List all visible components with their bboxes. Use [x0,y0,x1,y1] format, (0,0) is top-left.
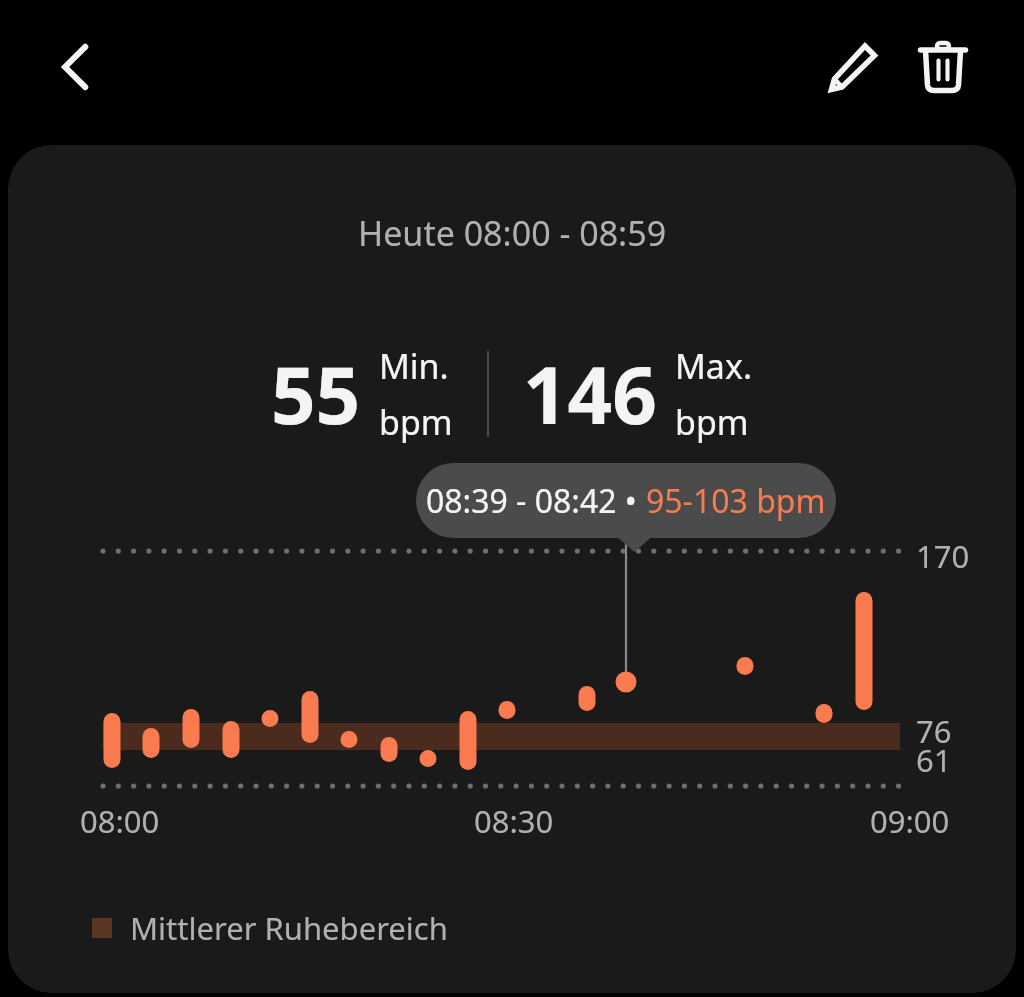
staticText: Heute 08:00 - 08:59 [358,210,667,256]
staticText: bpm [379,399,453,445]
button[interactable]: Delete [902,26,984,108]
button[interactable]: 08:39 - 08:42 • [416,463,836,538]
staticText: 08:00 [80,800,160,842]
staticText: 61 [916,739,952,781]
staticText: 08:30 [474,800,554,842]
staticText: bpm [675,399,749,445]
button[interactable]: Mittlerer Ruhebereich [92,907,448,949]
staticText: 170 [916,535,970,577]
staticText: Max. [675,343,753,389]
staticText: 08:39 - 08:42 • [426,479,646,523]
staticText: 146 [523,341,657,447]
staticText: 76 [916,710,952,752]
staticText: Mittlerer Ruhebereich [130,907,448,949]
staticText: 09:00 [870,800,950,842]
staticText: 95-103 bpm [646,479,826,523]
staticText: Min. [379,343,449,389]
button[interactable]: Edit [812,26,894,108]
button[interactable]: Back [36,26,118,108]
staticText: 55 [271,341,361,447]
